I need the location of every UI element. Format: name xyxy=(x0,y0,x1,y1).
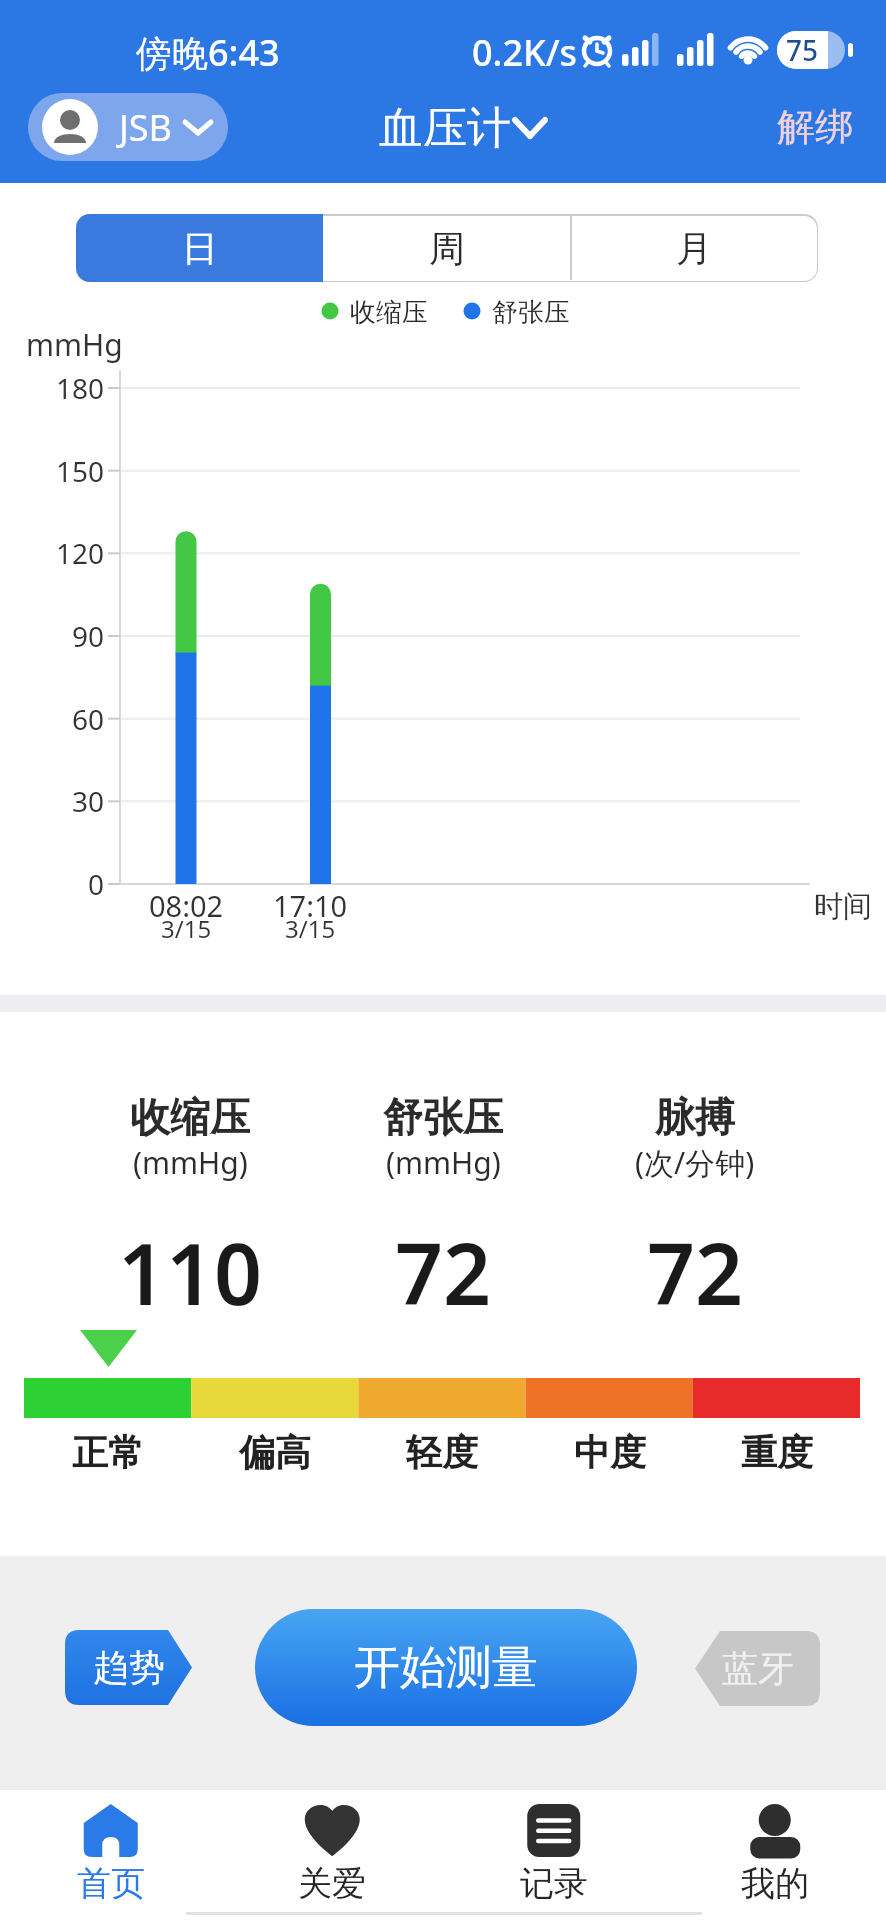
button[interactable] xyxy=(31,1790,191,1920)
staticText: JSB xyxy=(119,103,172,152)
staticText: (次/分钟) xyxy=(635,1142,755,1182)
staticText: 72 xyxy=(647,1215,744,1325)
staticText: 75 xyxy=(786,31,819,69)
button[interactable] xyxy=(695,1631,820,1706)
button[interactable] xyxy=(65,1630,192,1705)
staticText: 30 xyxy=(72,782,105,820)
staticText: 解绑 xyxy=(777,103,853,151)
staticText: 中度 xyxy=(574,1430,646,1474)
staticText: 60 xyxy=(72,700,105,738)
button[interactable] xyxy=(28,93,228,161)
staticText: 150 xyxy=(56,452,105,490)
staticText: 110 xyxy=(118,1215,263,1325)
staticText: (mmHg) xyxy=(386,1142,501,1182)
button[interactable] xyxy=(76,214,323,282)
staticText: 趋势 xyxy=(93,1645,165,1690)
button[interactable] xyxy=(255,1609,637,1726)
staticText: 记录 xyxy=(520,1862,588,1902)
staticText: 3/15 xyxy=(285,912,336,942)
staticText: 120 xyxy=(56,534,105,572)
button[interactable]: 解绑 xyxy=(770,103,860,151)
staticText: 首页 xyxy=(77,1862,145,1902)
staticText: 血压计 xyxy=(379,101,511,153)
staticText: 傍晚6:43 xyxy=(136,28,280,72)
button[interactable] xyxy=(474,1790,634,1920)
staticText: 月 xyxy=(676,226,712,271)
staticText: 轻度 xyxy=(406,1430,478,1474)
staticText: 脉搏 xyxy=(655,1092,735,1140)
staticText: 周 xyxy=(429,226,465,271)
staticText: 收缩压 xyxy=(130,1092,250,1140)
staticText: 3/15 xyxy=(161,912,212,942)
button[interactable] xyxy=(252,1790,412,1920)
button[interactable] xyxy=(695,1790,855,1920)
staticText: 舒张压 xyxy=(492,296,570,328)
staticText: (mmHg) xyxy=(133,1142,248,1182)
staticText: 重度 xyxy=(741,1430,813,1474)
staticText: 正常 xyxy=(72,1430,144,1474)
staticText: 08:02 xyxy=(149,886,224,920)
staticText: 蓝牙 xyxy=(722,1646,794,1691)
staticText: 我的 xyxy=(741,1862,809,1902)
staticText: 舒张压 xyxy=(383,1092,503,1140)
staticText: 开始测量 xyxy=(354,1639,538,1697)
staticText: 90 xyxy=(72,617,105,655)
staticText: 偏高 xyxy=(239,1430,311,1474)
button[interactable]: 周 xyxy=(323,214,570,282)
staticText: 收缩压 xyxy=(350,296,428,328)
staticText: mmHg xyxy=(26,324,123,365)
staticText: 日 xyxy=(182,226,218,271)
staticText: 17:10 xyxy=(273,886,348,920)
staticText: 72 xyxy=(395,1215,492,1325)
staticText: 时间 xyxy=(814,888,872,924)
staticText: 关爱 xyxy=(298,1862,366,1902)
staticText: 0 xyxy=(88,865,105,903)
button[interactable]: 月 xyxy=(570,214,817,282)
staticText: 180 xyxy=(56,369,105,407)
staticText: 0.2K/s xyxy=(472,28,578,72)
